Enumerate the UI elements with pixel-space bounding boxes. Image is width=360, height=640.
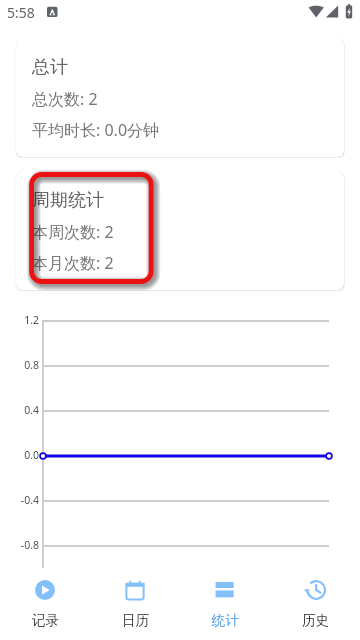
staticText: 1.2 (0, 313, 39, 327)
other: History (305, 580, 325, 600)
staticText: -0.4 (0, 493, 39, 507)
staticText: 5:58 (7, 3, 35, 22)
other: Statistics (215, 580, 235, 600)
staticText: 统计 (212, 612, 239, 629)
staticText: 平均时长: 0.0分钟 (32, 119, 160, 141)
button[interactable]: History (270, 568, 360, 629)
staticText: 本周次数: 2 (32, 221, 114, 243)
staticText: 0.8 (0, 358, 39, 372)
button[interactable]: Record (0, 568, 90, 629)
other: Record (35, 580, 55, 600)
button[interactable]: 总计 (16, 39, 344, 157)
staticText: 总计 (32, 56, 68, 79)
staticText: 历史 (302, 612, 329, 629)
staticText: 0.4 (0, 403, 39, 417)
button[interactable]: Statistics (180, 568, 270, 629)
staticText: -0.8 (0, 538, 39, 552)
staticText: 周期统计 (32, 189, 104, 212)
staticText: 日历 (122, 612, 149, 629)
staticText: 记录 (32, 612, 59, 629)
button[interactable]: 周期统计 (16, 172, 344, 290)
staticText: 本月次数: 2 (32, 252, 114, 274)
staticText: 0.0 (0, 448, 39, 462)
other: Calendar (125, 580, 145, 600)
button[interactable]: Calendar (90, 568, 180, 629)
staticText: 总次数: 2 (32, 88, 98, 110)
